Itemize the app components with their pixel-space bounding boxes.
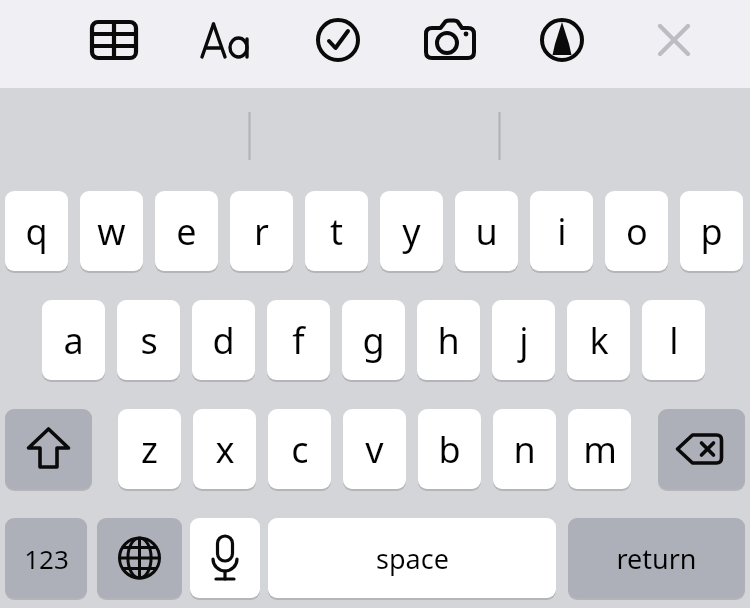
button[interactable]: m [568, 409, 631, 489]
button[interactable]: x [193, 409, 256, 489]
staticText: s [140, 316, 158, 365]
button[interactable]: z [118, 409, 181, 489]
button[interactable]: Markup [530, 8, 594, 72]
button[interactable]: r [230, 191, 293, 271]
button[interactable]: p [680, 191, 743, 271]
button[interactable]: o [605, 191, 668, 271]
staticText: return [616, 540, 697, 577]
staticText: n [513, 425, 536, 474]
button[interactable]: b [418, 409, 481, 489]
button[interactable]: n [493, 409, 556, 489]
staticText: k [589, 316, 609, 365]
button[interactable]: Camera [418, 8, 482, 72]
button[interactable]: Insert table [82, 8, 146, 72]
button[interactable]: 123 [5, 518, 87, 598]
button[interactable]: Text format [194, 8, 258, 72]
staticText: q [25, 207, 48, 256]
button[interactable]: u [455, 191, 518, 271]
staticText: c [291, 425, 309, 474]
staticText: l [669, 316, 679, 365]
button[interactable]: Dictation [190, 518, 260, 598]
button[interactable]: Close keyboard [642, 8, 706, 72]
staticText: h [437, 316, 460, 365]
button[interactable]: f [267, 300, 330, 380]
button[interactable]: Backspace [658, 409, 745, 489]
button[interactable]: q [5, 191, 68, 271]
staticText: r [254, 207, 269, 256]
button[interactable]: Checklist [306, 8, 370, 72]
button[interactable]: i [530, 191, 593, 271]
staticText: o [626, 207, 648, 256]
button[interactable]: space [268, 518, 556, 598]
button[interactable]: y [380, 191, 443, 271]
staticText: f [292, 316, 305, 365]
staticText: g [362, 316, 385, 365]
button[interactable]: v [343, 409, 406, 489]
button[interactable]: g [342, 300, 405, 380]
staticText: space [376, 540, 449, 577]
staticText: p [700, 207, 723, 256]
button[interactable]: a [42, 300, 105, 380]
staticText: d [212, 316, 235, 365]
staticText: w [97, 207, 126, 256]
button[interactable]: return [568, 518, 745, 598]
button[interactable]: j [492, 300, 555, 380]
button[interactable]: e [155, 191, 218, 271]
button[interactable]: s [117, 300, 180, 380]
staticText: z [141, 425, 158, 474]
staticText: m [583, 425, 617, 474]
button[interactable]: h [417, 300, 480, 380]
staticText: b [438, 425, 461, 474]
button[interactable]: d [192, 300, 255, 380]
staticText: x [215, 425, 235, 474]
button[interactable]: w [80, 191, 143, 271]
staticText: e [176, 207, 197, 256]
staticText: i [557, 207, 567, 256]
staticText: y [402, 207, 421, 256]
button[interactable]: Next keyboard [97, 518, 182, 598]
staticText: a [63, 316, 84, 365]
staticText: t [330, 207, 343, 256]
button[interactable]: c [268, 409, 331, 489]
staticText: 123 [24, 541, 69, 576]
button[interactable]: Shift [5, 409, 92, 489]
staticText: u [475, 207, 498, 256]
staticText: v [365, 425, 384, 474]
button[interactable]: t [305, 191, 368, 271]
button[interactable]: l [642, 300, 705, 380]
button[interactable]: k [567, 300, 630, 380]
staticText: j [519, 316, 529, 365]
